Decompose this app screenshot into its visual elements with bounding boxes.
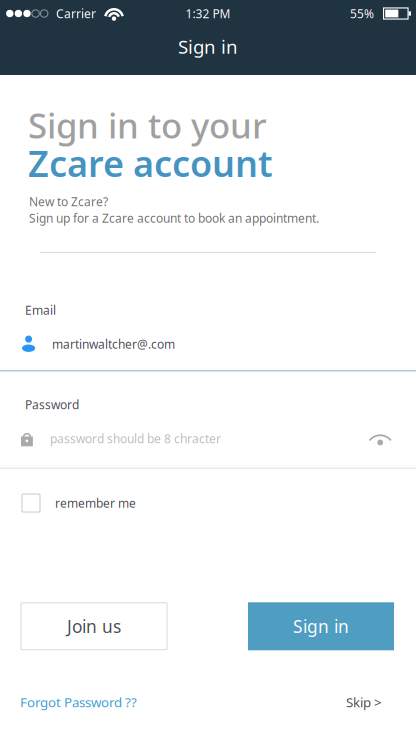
staticText: Email — [25, 302, 56, 318]
button[interactable]: remember me — [0, 491, 416, 515]
staticText: Sign in — [293, 615, 349, 638]
staticText: New to Zcare? — [29, 193, 108, 209]
staticText: Password — [25, 396, 79, 412]
staticText: Sign in to your — [28, 102, 267, 148]
button[interactable]: Join us — [21, 603, 167, 650]
staticText: Forgot Password ?? — [20, 693, 137, 711]
staticText: 1:32 PM — [185, 5, 230, 21]
staticText: Sign in — [178, 34, 238, 59]
button[interactable]: Skip > — [346, 693, 382, 711]
staticText: Join us — [67, 615, 121, 638]
button[interactable]: Forgot Password ?? — [20, 693, 137, 711]
staticText: Skip > — [346, 693, 382, 711]
button[interactable]: Show password — [369, 431, 416, 446]
staticText: Zcare account — [28, 139, 273, 187]
button[interactable]: Sign in — [248, 602, 394, 650]
staticText: Sign up for a Zcare account to book an a… — [29, 210, 319, 226]
staticText: 55% — [350, 5, 374, 21]
staticText: password should be 8 chracter — [50, 430, 221, 446]
staticText: remember me — [55, 495, 136, 511]
staticText: Carrier — [56, 5, 96, 21]
staticText: martinwaltcher@.com — [52, 336, 175, 352]
